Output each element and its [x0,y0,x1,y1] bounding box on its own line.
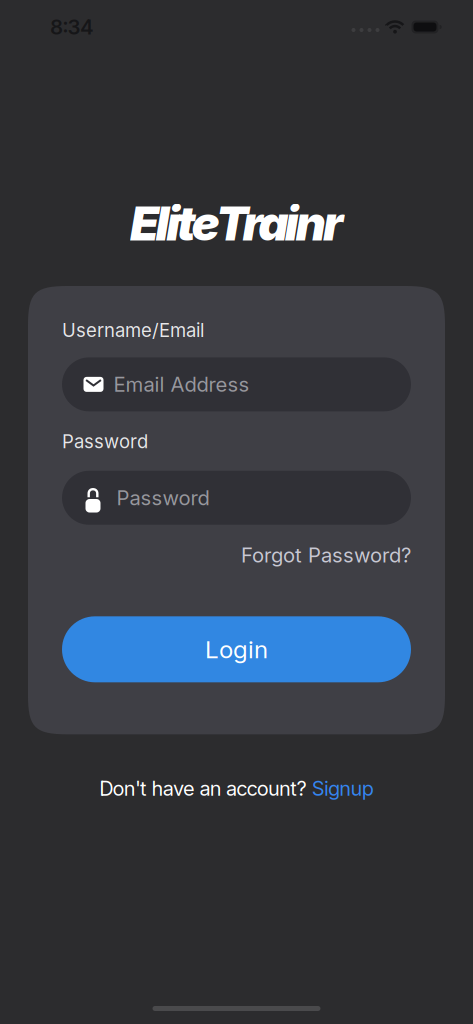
button[interactable]: Signup [312,776,374,800]
button[interactable]: Login [62,616,411,682]
staticText: Signup [312,776,374,800]
staticText: Username/Email [62,319,204,341]
staticText: Don't have an account? [99,776,312,800]
button[interactable]: Forgot Password? [241,543,411,567]
staticText: Password [62,430,148,453]
staticText: Email Address [113,372,249,397]
button[interactable]: Password [62,471,411,525]
staticText: EliteTrainr [130,196,343,251]
staticText: Password [116,485,209,510]
button[interactable]: Email Address [62,357,411,411]
staticText: 8:34 [50,15,94,39]
staticText: Forgot Password? [241,543,411,567]
staticText: Login [205,635,268,664]
